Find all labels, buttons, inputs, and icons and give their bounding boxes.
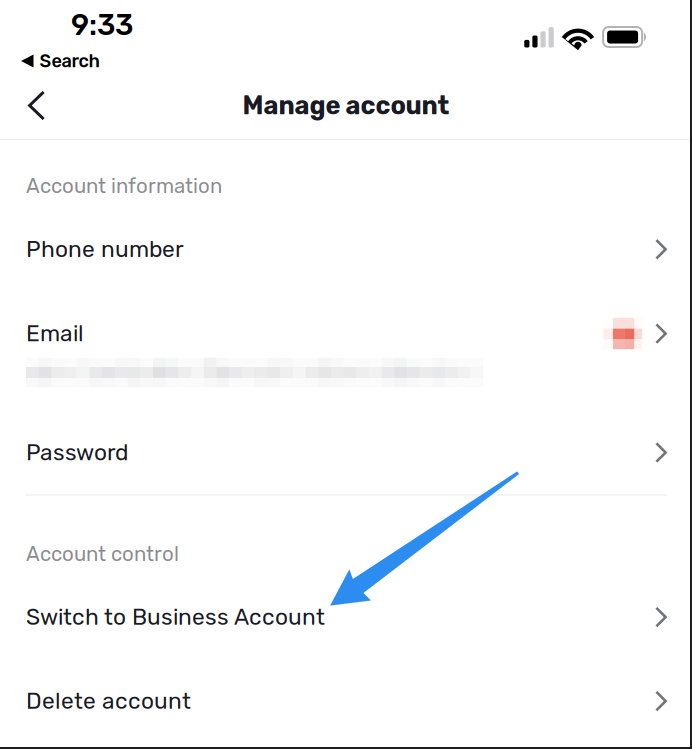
- staticText: Delete account: [26, 688, 191, 714]
- staticText: Password: [26, 439, 128, 466]
- staticText: Switch to Business Account: [26, 604, 325, 630]
- button[interactable]: Delete account: [0, 659, 692, 743]
- staticText: Manage account: [242, 90, 449, 120]
- staticText: Email: [26, 320, 84, 347]
- button[interactable]: Back: [16, 79, 57, 131]
- staticText: Phone number: [26, 236, 184, 263]
- button[interactable]: Switch to Business Account: [0, 575, 692, 659]
- staticText: Account information: [26, 174, 222, 198]
- button[interactable]: Phone number: [0, 207, 692, 291]
- staticText: Account control: [26, 542, 179, 566]
- staticText: 9:33: [71, 8, 133, 42]
- button[interactable]: Password: [0, 410, 692, 494]
- staticText: Search: [39, 50, 99, 72]
- button[interactable]: Search: [0, 48, 111, 74]
- button[interactable]: Email: [0, 291, 692, 410]
